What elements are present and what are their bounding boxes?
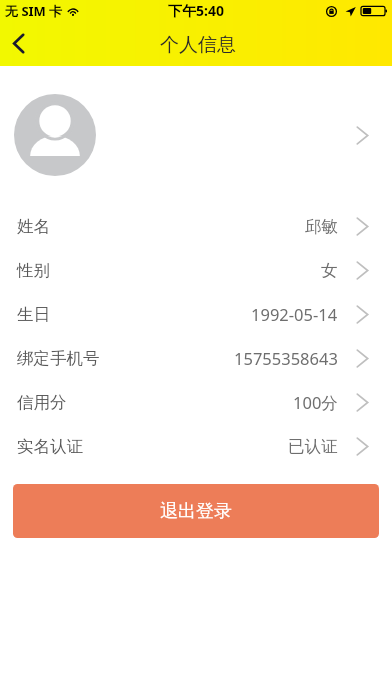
staticText: 1992-05-14 — [251, 303, 338, 325]
button[interactable]: Back — [0, 21, 36, 66]
button[interactable]: 绑定手机号 — [0, 336, 392, 380]
staticText: 个人信息 — [160, 33, 236, 57]
staticText: 生日 — [17, 304, 50, 325]
staticText: 姓名 — [17, 216, 50, 237]
staticText: 下午5:40 — [168, 1, 224, 20]
staticText: 性别 — [17, 260, 50, 281]
staticText: 已认证 — [288, 436, 338, 457]
button[interactable]: 生日 — [0, 292, 392, 336]
button[interactable]: 姓名 — [0, 204, 392, 248]
button[interactable]: 退出登录 — [13, 484, 379, 538]
staticText: 退出登录 — [160, 500, 232, 523]
button[interactable]: 信用分 — [0, 380, 392, 424]
staticText: 绑定手机号 — [17, 348, 100, 369]
staticText: 信用分 — [17, 392, 67, 413]
staticText: 无 SIM 卡 — [5, 2, 63, 20]
staticText: 实名认证 — [17, 436, 83, 457]
staticText: 15755358643 — [234, 347, 338, 369]
button[interactable]: 实名认证 — [0, 424, 392, 468]
staticText: 邱敏 — [305, 216, 338, 237]
staticText: 100分 — [293, 391, 338, 414]
staticText: 女 — [321, 260, 338, 281]
button[interactable]: 性别 — [0, 248, 392, 292]
button[interactable] — [0, 66, 392, 204]
